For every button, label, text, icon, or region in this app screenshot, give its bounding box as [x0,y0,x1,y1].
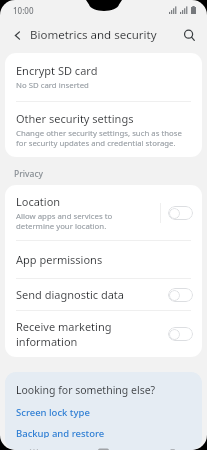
staticText: Privacy [14,168,44,180]
staticText: Other security settings [16,111,134,126]
button[interactable]: Toggle off [168,327,193,341]
staticText: Biometrics and security [30,27,157,43]
button[interactable]: Screen lock type [16,406,90,419]
staticText: No SD card inserted [16,80,89,91]
staticText: Send diagnostic data [16,287,168,302]
staticText: Location [16,194,61,209]
staticText: Receive marketing information [16,319,168,349]
staticText: Looking for something else? [16,383,156,397]
staticText: App permissions [16,252,193,267]
staticText: Encrypt SD card [16,63,98,78]
button[interactable]: Receive marketing information [5,311,202,357]
button[interactable]: Backup and restore [16,427,105,438]
button[interactable]: Encrypt SD card [5,53,202,101]
button[interactable]: Send diagnostic data [5,279,202,310]
staticText: 10:00 [13,5,34,16]
button[interactable]: Toggle off [168,288,193,302]
button[interactable]: App permissions [5,241,202,278]
button[interactable]: Location [5,185,202,240]
button[interactable]: Toggle off [168,206,193,220]
button[interactable]: Search [176,22,202,48]
staticText: Change other security settings, such as … [16,128,191,148]
button[interactable]: Back [5,23,29,47]
staticText: Allow apps and services to determine you… [16,211,152,231]
button[interactable]: Other security settings [5,102,202,157]
